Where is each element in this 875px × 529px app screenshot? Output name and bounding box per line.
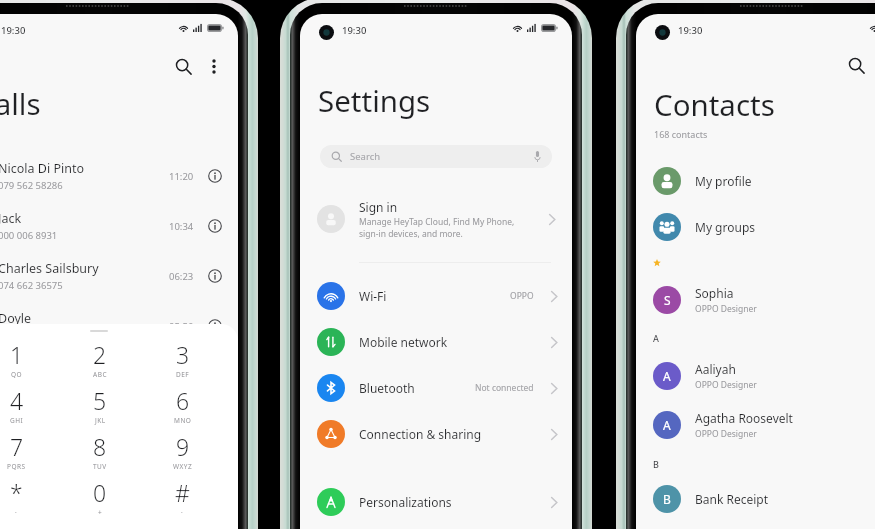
staticText: 19:30 (678, 24, 703, 37)
button[interactable]: My groups (636, 204, 875, 250)
staticText: Not connected (475, 382, 534, 394)
button[interactable]: Nicola Di Pinto (0, 151, 238, 201)
button[interactable]: * (0, 477, 58, 523)
button[interactable]: B (636, 476, 875, 522)
button[interactable]: Call details (205, 266, 225, 286)
staticText: 11:20 (169, 170, 194, 183)
staticText: · (181, 508, 184, 517)
staticText: Search (350, 150, 534, 163)
staticText: Nicola Di Pinto (0, 160, 84, 177)
button[interactable]: 6 (141, 385, 224, 431)
button[interactable]: 1 (0, 339, 58, 385)
staticText: * (10, 477, 23, 508)
staticText: 2 (93, 339, 107, 370)
button[interactable]: Sign in (300, 198, 572, 240)
button[interactable]: A (636, 402, 875, 448)
staticText: Calls (0, 83, 41, 123)
button[interactable]: Bluetooth (300, 365, 572, 411)
staticText: S (664, 292, 671, 308)
staticText: 4 (10, 385, 24, 416)
staticText: TUV (93, 462, 107, 471)
button[interactable]: Personalizations (300, 479, 572, 525)
button[interactable]: 9 (141, 431, 224, 477)
staticText: Agatha Roosevelt (695, 410, 793, 426)
button[interactable]: S (636, 277, 875, 323)
staticText: 5 (93, 385, 107, 416)
staticText: Mobile network (359, 334, 550, 350)
staticText: Wi-Fi (359, 288, 510, 304)
staticText: Settings (318, 80, 431, 120)
button[interactable]: 7 (0, 431, 58, 477)
staticText: Manage HeyTap Cloud, Find My Phone, (359, 216, 515, 228)
staticText: Connection & sharing (359, 426, 550, 442)
button[interactable]: 5 (58, 385, 141, 431)
staticText: OPPO Designer (695, 428, 757, 440)
staticText: Aaliyah (695, 361, 736, 377)
staticText: + (98, 508, 103, 517)
button[interactable]: 0 (58, 477, 141, 523)
button[interactable]: Charles Sailsbury (0, 251, 238, 301)
staticText: Jack (0, 210, 22, 227)
staticText: 168 contacts (654, 128, 708, 140)
button[interactable]: 4 (0, 385, 58, 431)
button[interactable]: Call details (205, 216, 225, 236)
button[interactable]: Mobile network (300, 319, 572, 365)
staticText: My groups (695, 219, 756, 235)
staticText: 7 (10, 431, 24, 462)
button[interactable]: A (636, 353, 875, 399)
button[interactable]: 2 (58, 339, 141, 385)
button[interactable]: Doyle (0, 301, 238, 351)
button[interactable]: Search (841, 50, 871, 80)
staticText: Sophia (695, 285, 734, 301)
button[interactable]: # (141, 477, 224, 523)
staticText: OPPO Designer (695, 379, 757, 391)
staticText: QO (11, 370, 23, 379)
staticText: Doyle (0, 310, 32, 327)
staticText: 9 (176, 431, 190, 462)
staticText: Bank Receipt (695, 491, 769, 507)
staticText: 079 562 58286 (0, 179, 63, 192)
staticText: 19:30 (342, 24, 367, 37)
button[interactable]: Call details (205, 316, 225, 336)
staticText: · (15, 508, 18, 517)
staticText: WXYZ (173, 462, 193, 471)
staticText: 10:34 (169, 220, 194, 233)
staticText: Bluetooth (359, 380, 475, 396)
button[interactable]: More options (201, 53, 227, 79)
staticText: 0 (93, 477, 107, 508)
button[interactable]: Jack (0, 201, 238, 251)
staticText: 8 (93, 431, 107, 462)
staticText: # (175, 477, 190, 508)
staticText: OPPO Designer (695, 303, 757, 315)
staticText: 000 006 8931 (0, 229, 58, 242)
staticText: DEF (176, 370, 190, 379)
staticText: 6 (176, 385, 190, 416)
staticText: 19:30 (1, 24, 26, 37)
button[interactable]: 8 (58, 431, 141, 477)
staticText: 06:23 (169, 270, 194, 283)
button[interactable]: 3 (141, 339, 224, 385)
staticText: 074 662 36575 (0, 279, 63, 292)
staticText: A (663, 368, 671, 384)
staticText: MNO (174, 416, 192, 425)
staticText: OPPO (510, 290, 534, 302)
staticText: PQRS (7, 462, 26, 471)
staticText: My profile (695, 173, 752, 189)
button[interactable]: Search (320, 145, 552, 168)
staticText: Sign in (359, 199, 398, 215)
staticText: B (663, 491, 671, 507)
staticText: ABC (93, 370, 107, 379)
button[interactable]: My profile (636, 158, 875, 204)
staticText: GHI (10, 416, 24, 425)
button[interactable]: Call details (205, 166, 225, 186)
button[interactable]: Wi-Fi (300, 273, 572, 319)
staticText: A (663, 417, 671, 433)
button[interactable]: Search (168, 51, 198, 81)
staticText: 3 (176, 339, 190, 370)
button[interactable]: Connection & sharing (300, 411, 572, 457)
staticText: JKL (95, 416, 106, 425)
staticText: B (653, 458, 659, 470)
staticText: Contacts (654, 84, 775, 124)
staticText: 05:56 (169, 320, 194, 333)
